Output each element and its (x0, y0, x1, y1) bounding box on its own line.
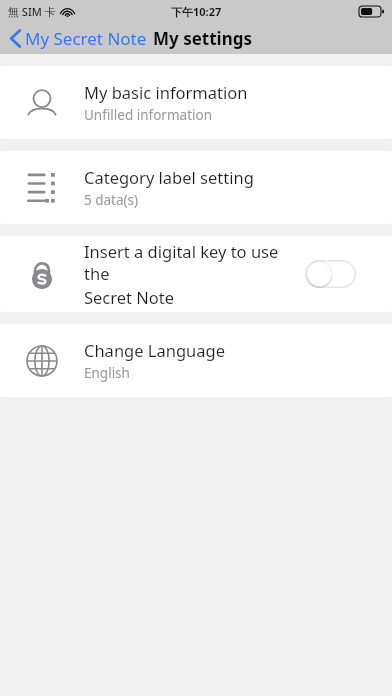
button[interactable]: Change Language (0, 324, 392, 397)
button[interactable]: Insert a digital key to use the (0, 236, 392, 312)
button[interactable]: Category label setting (0, 151, 392, 224)
staticText: Insert a digital key to use the (84, 240, 305, 284)
staticText: Change Language (84, 339, 225, 361)
staticText: My Secret Note (25, 27, 147, 50)
staticText: English (84, 364, 130, 382)
staticText: My settings (153, 27, 253, 50)
button[interactable]: My basic information (0, 66, 392, 139)
button[interactable]: Toggle digital key (305, 260, 356, 288)
staticText: My basic information (84, 81, 248, 103)
staticText: Secret Note (84, 286, 175, 308)
staticText: Category label setting (84, 166, 254, 188)
staticText: Unfilled information (84, 106, 213, 124)
staticText: 無 SIM 卡 (8, 4, 56, 19)
staticText: 5 data(s) (84, 191, 139, 209)
button[interactable]: My Secret Note (0, 24, 153, 53)
staticText: 下午10:27 (171, 4, 222, 19)
